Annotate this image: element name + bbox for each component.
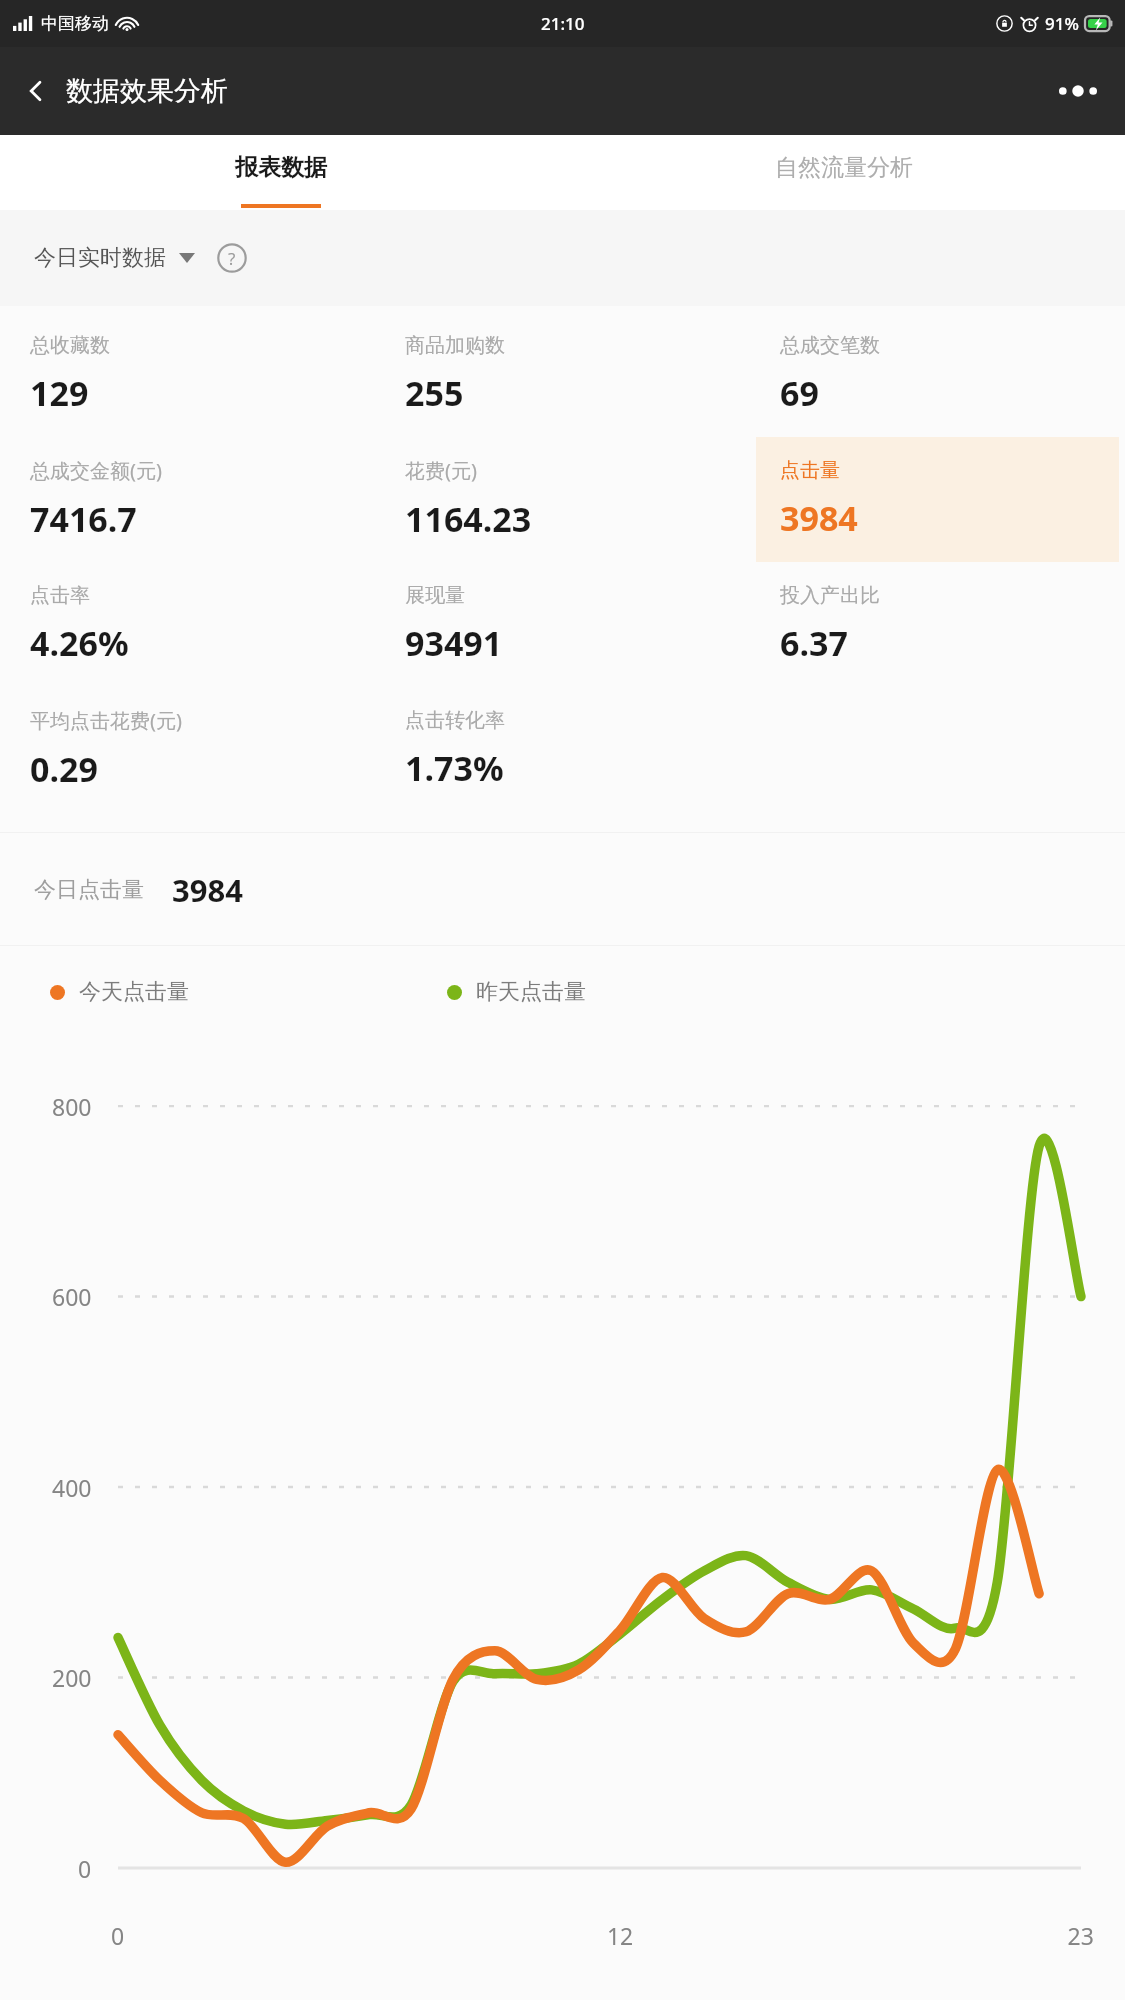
staticText: 总成交笔数 <box>780 333 880 358</box>
button[interactable]: Help <box>217 243 247 273</box>
button[interactable]: 总成交金额(元) <box>0 437 375 562</box>
staticText: 1.73% <box>405 745 504 791</box>
staticText: 4.26% <box>30 620 129 666</box>
staticText: 3984 <box>780 495 858 541</box>
button[interactable]: 总收藏数 <box>0 312 375 437</box>
button[interactable]: 商品加购数 <box>375 312 750 437</box>
button[interactable]: 自然流量分析 <box>562 135 1125 210</box>
staticText: 今天点击量 <box>79 978 189 1006</box>
staticText: 数据效果分析 <box>66 74 228 108</box>
staticText: 总成交金额(元) <box>30 457 162 484</box>
staticText: 展现量 <box>405 583 465 608</box>
button[interactable]: 点击率 <box>0 562 375 687</box>
staticText: 21:10 <box>541 12 585 35</box>
staticText: 商品加购数 <box>405 333 505 358</box>
staticText: 昨天点击量 <box>476 978 586 1006</box>
staticText: 点击量 <box>780 458 840 483</box>
button[interactable]: 花费(元) <box>375 437 750 562</box>
staticText: 1164.23 <box>405 496 532 542</box>
staticText: 总收藏数 <box>30 333 110 358</box>
staticText: 7416.7 <box>30 496 137 542</box>
button[interactable]: 点击转化率 <box>375 687 750 812</box>
staticText: 投入产出比 <box>780 583 880 608</box>
button[interactable]: More options <box>1045 63 1111 119</box>
staticText: 0.29 <box>30 746 98 792</box>
staticText: 今日点击量 <box>34 876 144 904</box>
staticText: 6.37 <box>780 620 848 666</box>
staticText: 中国移动 <box>41 13 109 34</box>
staticText: 129 <box>30 370 89 416</box>
staticText: 3984 <box>172 869 243 911</box>
staticText: 花费(元) <box>405 457 477 484</box>
staticText: 今日实时数据 <box>34 244 166 272</box>
staticText: ? <box>228 247 236 270</box>
button[interactable]: 投入产出比 <box>750 562 1125 687</box>
button[interactable]: 今日实时数据 <box>34 244 195 272</box>
staticText: 255 <box>405 370 464 416</box>
staticText: 69 <box>780 370 819 416</box>
staticText: 点击率 <box>30 583 90 608</box>
staticText: 报表数据 <box>235 153 327 182</box>
staticText: 91% <box>1045 12 1079 35</box>
button[interactable]: 平均点击花费(元) <box>0 687 375 812</box>
button[interactable]: 点击量 <box>756 437 1119 562</box>
staticText: 点击转化率 <box>405 708 505 733</box>
staticText: 平均点击花费(元) <box>30 707 182 734</box>
button[interactable]: Back <box>8 63 64 119</box>
staticText: 93491 <box>405 620 503 666</box>
button[interactable]: 报表数据 <box>0 135 562 210</box>
staticText: 自然流量分析 <box>775 153 913 182</box>
button[interactable]: 展现量 <box>375 562 750 687</box>
button[interactable]: 总成交笔数 <box>750 312 1125 437</box>
